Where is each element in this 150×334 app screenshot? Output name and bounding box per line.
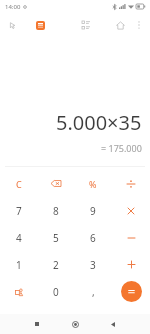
button[interactable]: Scientific xyxy=(0,278,37,305)
button[interactable]: 8 xyxy=(37,197,74,224)
staticText: 7 xyxy=(16,204,22,218)
button[interactable]: Calculator xyxy=(31,16,49,34)
button[interactable]: Multiply xyxy=(112,197,150,224)
button[interactable]: Cursor xyxy=(3,16,21,34)
staticText: 5 xyxy=(53,231,59,245)
button[interactable]: 0 xyxy=(37,278,74,305)
button[interactable]: 2 xyxy=(37,251,74,278)
button[interactable]: 3 xyxy=(74,251,112,278)
button[interactable]: , xyxy=(74,278,112,305)
staticText: 1 xyxy=(16,258,22,272)
button[interactable]: Back xyxy=(106,317,120,331)
button[interactable]: Home xyxy=(68,317,82,331)
staticText: 8 xyxy=(53,204,59,218)
staticText: 2 xyxy=(53,258,59,272)
staticText: = 175.000 xyxy=(101,142,142,154)
staticText: 14:00 xyxy=(5,3,21,11)
button[interactable]: More options xyxy=(131,17,147,33)
button[interactable]: Plus xyxy=(112,251,150,278)
staticText: % xyxy=(89,178,97,190)
staticText: 6 xyxy=(90,231,96,245)
button[interactable]: Home xyxy=(111,16,129,34)
staticText: , xyxy=(92,285,95,299)
button[interactable]: Backspace xyxy=(37,170,74,197)
staticText: 5.000×35 xyxy=(56,109,142,136)
staticText: 9 xyxy=(90,204,96,218)
staticText: C xyxy=(16,178,22,190)
button[interactable]: 1 xyxy=(0,251,37,278)
button[interactable]: Recents xyxy=(30,317,44,331)
button[interactable]: 9 xyxy=(74,197,112,224)
button[interactable]: Divide xyxy=(112,170,150,197)
button[interactable]: 4 xyxy=(0,224,37,251)
button[interactable]: C xyxy=(0,170,37,197)
button[interactable]: 5 xyxy=(37,224,74,251)
staticText: 3 xyxy=(90,258,96,272)
button[interactable]: History xyxy=(77,16,95,34)
button[interactable]: 7 xyxy=(0,197,37,224)
staticText: 4 xyxy=(16,231,22,245)
button[interactable]: Minus xyxy=(112,224,150,251)
button[interactable]: 6 xyxy=(74,224,112,251)
staticText: 0 xyxy=(53,285,59,299)
button[interactable]: % xyxy=(74,170,112,197)
button[interactable]: Equals xyxy=(121,281,142,302)
